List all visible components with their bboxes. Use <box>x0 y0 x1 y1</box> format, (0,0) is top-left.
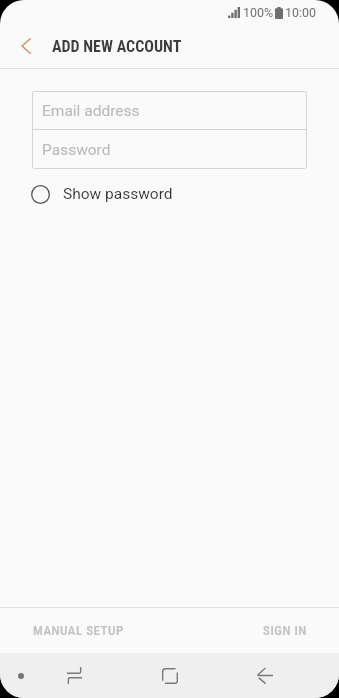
staticText: MANUAL SETUP <box>33 623 124 638</box>
staticText: Show password <box>63 185 173 203</box>
button[interactable]: Hide navigation bar <box>7 662 35 690</box>
staticText: Email address <box>42 102 140 120</box>
button[interactable]: Home <box>147 653 192 698</box>
staticText: Password <box>42 141 111 159</box>
button[interactable]: Show password <box>30 179 173 209</box>
button[interactable]: Back <box>242 653 287 698</box>
staticText: 100% <box>243 5 274 20</box>
button[interactable]: MANUAL SETUP <box>0 608 144 653</box>
button[interactable]: Navigate up <box>0 24 48 68</box>
button[interactable]: Recents <box>52 653 97 698</box>
staticText: ADD NEW ACCOUNT <box>52 37 182 56</box>
button[interactable]: Password <box>32 130 307 169</box>
button[interactable]: Email address <box>32 91 307 130</box>
staticText: SIGN IN <box>263 623 307 638</box>
staticText: 10:00 <box>285 5 317 20</box>
button[interactable]: SIGN IN <box>243 608 339 653</box>
